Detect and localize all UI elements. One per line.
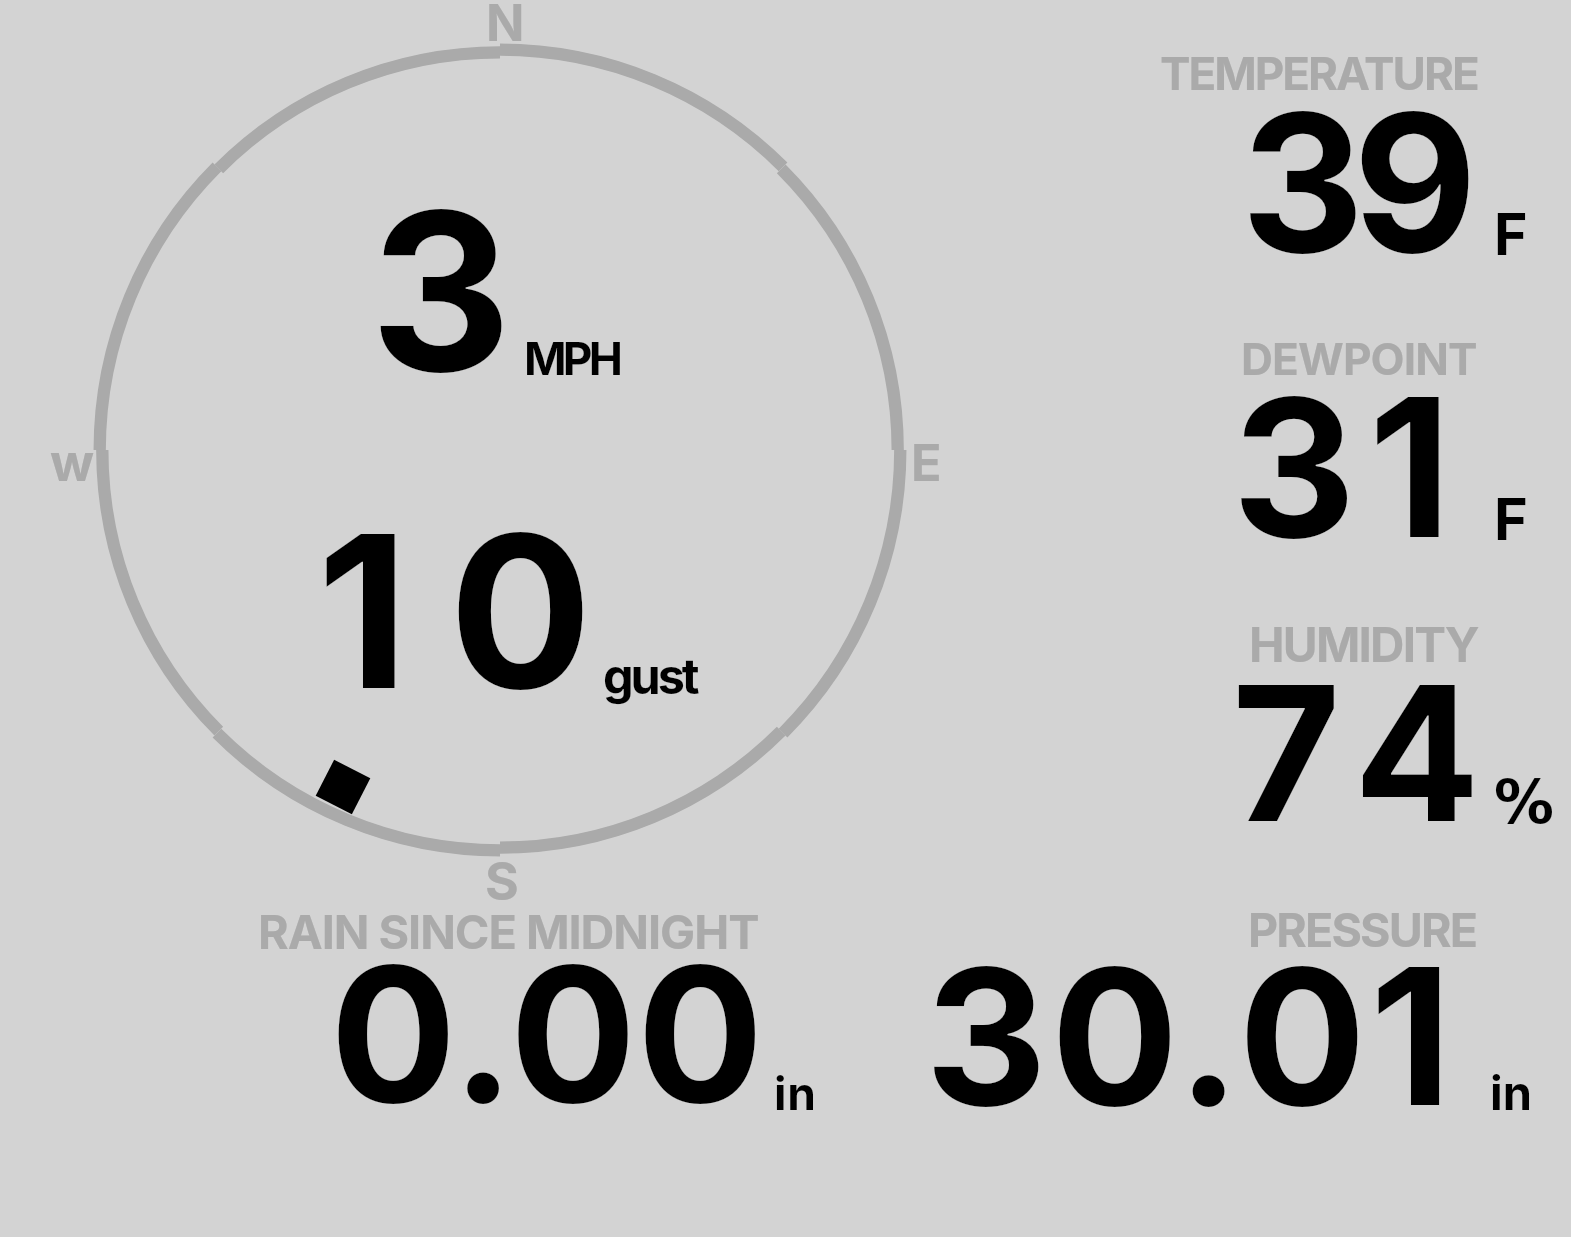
staticText: 0.00	[330, 920, 765, 1147]
button[interactable]: Humidity 74 percent	[1140, 600, 1560, 850]
button[interactable]: Rain since midnight 0.00 in	[230, 890, 850, 1130]
staticText: HUMIDITY	[1249, 616, 1478, 674]
staticText: %	[1494, 767, 1554, 837]
staticText: E	[911, 432, 942, 493]
staticText: in	[774, 1065, 817, 1121]
staticText: gust	[603, 647, 697, 706]
staticText: 3	[370, 159, 512, 424]
staticText: PRESSURE	[1248, 902, 1477, 958]
staticText: TEMPERATURE	[1160, 46, 1478, 101]
staticText: MPH	[524, 331, 620, 386]
staticText: 31	[1232, 351, 1464, 583]
staticText: 10	[317, 483, 633, 740]
staticText: 74	[1232, 640, 1504, 866]
staticText: F	[1494, 200, 1528, 269]
button[interactable]: Wind speed and direction	[20, 0, 960, 900]
button[interactable]: Pressure 30.01 in	[900, 890, 1560, 1130]
staticText: N	[486, 0, 525, 53]
button[interactable]: Dewpoint 31 F	[1140, 320, 1560, 580]
staticText: DEWPOINT	[1241, 332, 1477, 385]
button[interactable]: Temperature 39 F	[1140, 30, 1560, 290]
staticText: in	[1490, 1065, 1532, 1122]
staticText: RAIN SINCE MIDNIGHT	[258, 904, 759, 961]
staticText: 39	[1241, 67, 1466, 298]
staticText: 30.01	[925, 922, 1456, 1151]
staticText: S	[485, 850, 519, 912]
staticText: F	[1494, 484, 1528, 554]
staticText: w	[50, 431, 95, 494]
